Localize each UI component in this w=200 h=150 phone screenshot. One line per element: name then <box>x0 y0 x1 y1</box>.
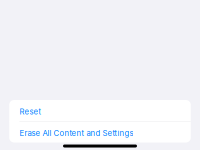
button[interactable]: Erase All Content and Settings <box>9 121 191 142</box>
staticText: Erase All Content and Settings <box>19 129 133 138</box>
button[interactable]: Reset <box>9 100 191 121</box>
staticText: Reset <box>19 107 41 116</box>
